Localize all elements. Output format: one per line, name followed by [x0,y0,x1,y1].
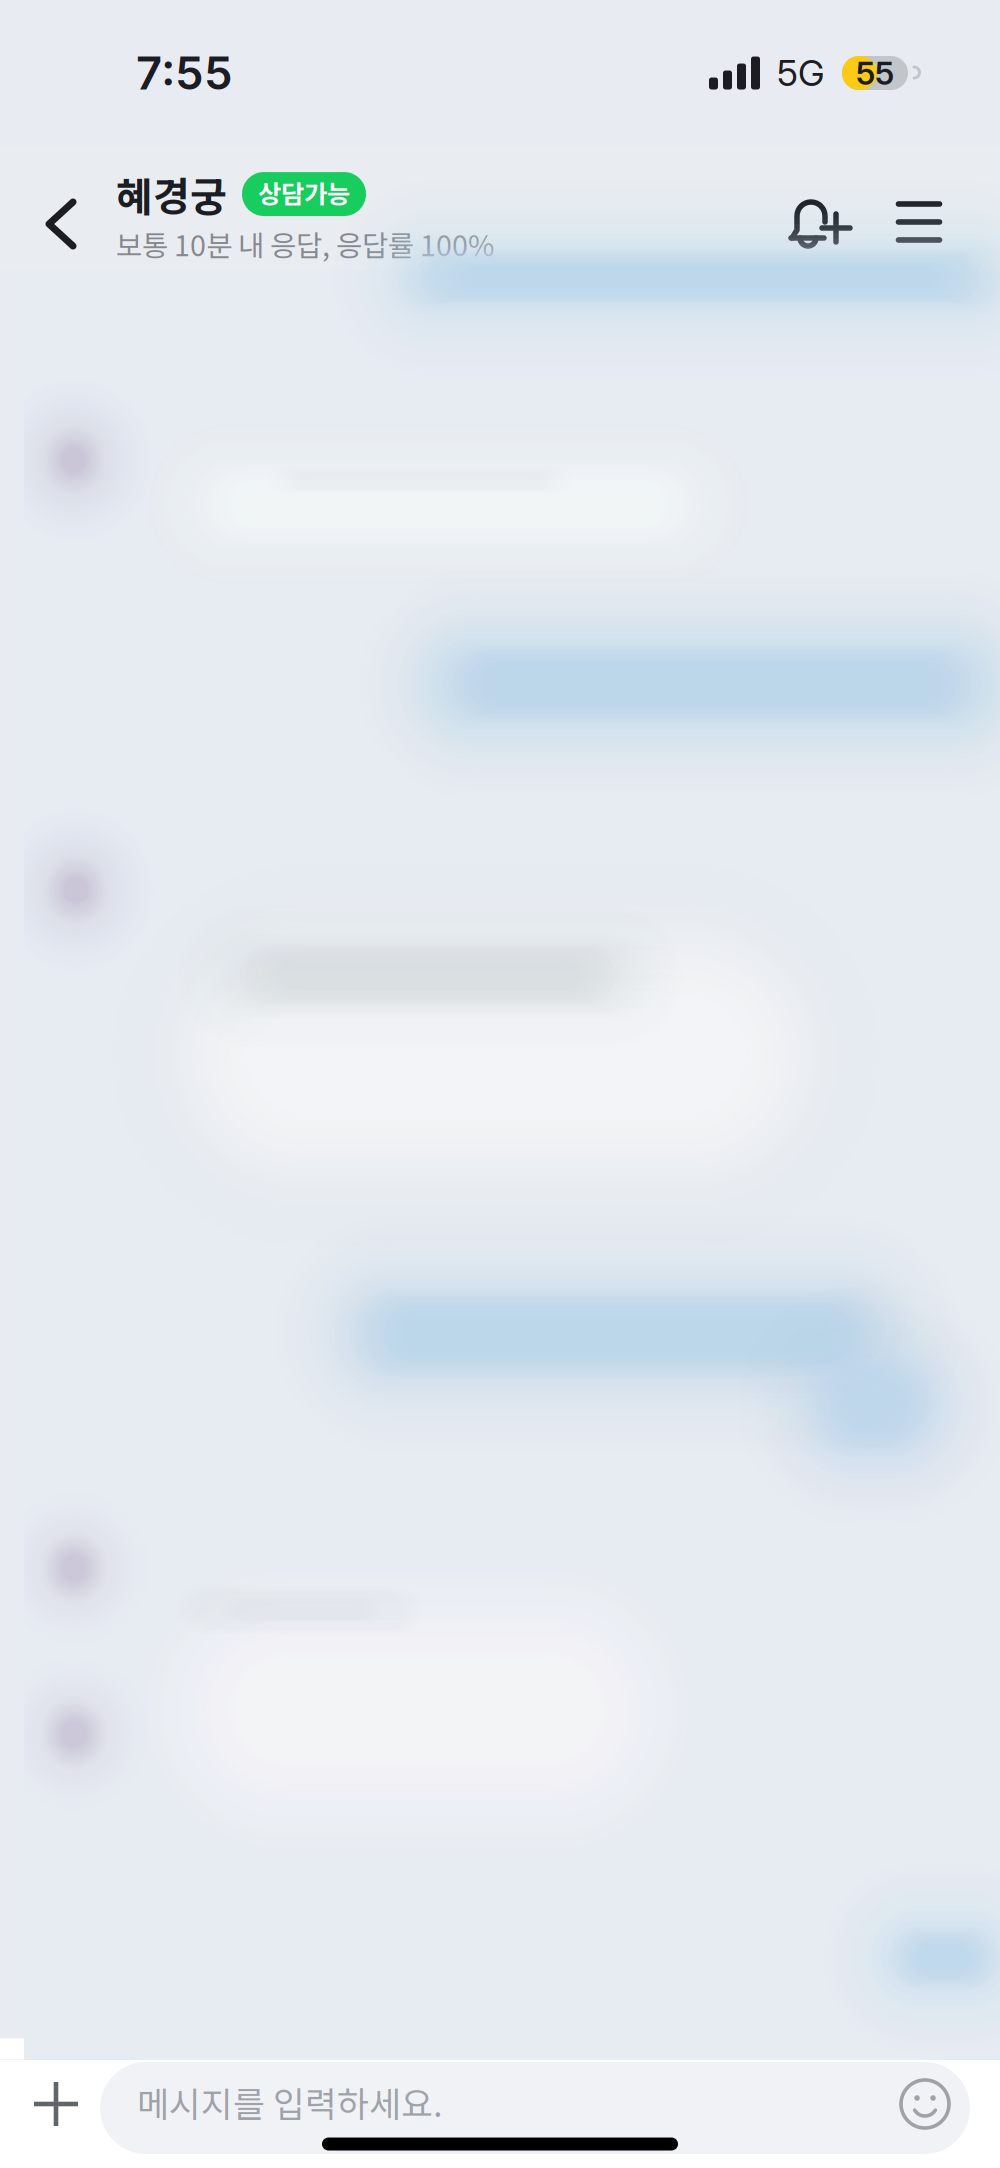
staticText: 55 [856,54,894,92]
staticText: 메시지를 입력하세요. [137,2077,443,2127]
staticText: 보통 10분 내 응답, 응답률 100% [116,223,494,264]
button[interactable]: Emoji [884,2062,970,2154]
button[interactable]: Back [0,146,116,270]
staticText: 5G [777,51,824,95]
button[interactable]: Notifications [794,146,890,270]
button[interactable]: Menu [890,146,980,270]
staticText: 혜경궁 [116,165,227,223]
button[interactable]: Add attachment [0,2060,100,2156]
staticText: 상담가능 [258,174,350,211]
staticText: 7:55 [136,46,233,100]
